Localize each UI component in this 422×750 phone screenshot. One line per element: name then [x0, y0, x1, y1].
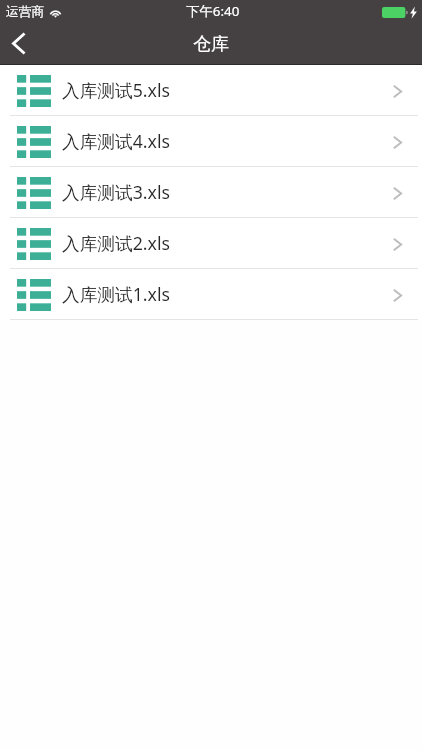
staticText: 入库测试2.xls [62, 231, 170, 255]
staticText: 入库测试3.xls [62, 180, 170, 204]
button[interactable]: 入库测试2.xls [0, 218, 422, 269]
button[interactable]: 入库测试5.xls [0, 65, 422, 116]
staticText: 下午6:40 [186, 2, 240, 20]
staticText: 运营商 [6, 4, 45, 20]
staticText: 入库测试1.xls [62, 282, 170, 306]
button[interactable]: Back [0, 24, 46, 65]
button[interactable]: 入库测试3.xls [0, 167, 422, 218]
staticText: 入库测试4.xls [62, 129, 170, 153]
button[interactable]: 入库测试4.xls [0, 116, 422, 167]
button[interactable]: 入库测试1.xls [0, 269, 422, 320]
staticText: 仓库 [193, 33, 229, 56]
staticText: 入库测试5.xls [62, 78, 170, 102]
